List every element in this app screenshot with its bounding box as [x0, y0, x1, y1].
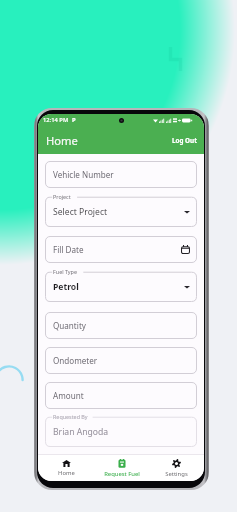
staticText: Select Project	[53, 206, 108, 218]
other: Pick date	[181, 245, 190, 254]
button[interactable]: Project	[45, 192, 197, 227]
staticText: Request Fuel	[104, 470, 140, 478]
staticText: Amount	[53, 390, 84, 401]
other: Open Fuel Type dropdown	[184, 285, 190, 289]
staticText: P	[72, 116, 76, 124]
staticText: Brian Angoda	[53, 426, 109, 438]
staticText: Petrol	[53, 281, 79, 293]
other: Open Project dropdown	[184, 210, 190, 214]
button[interactable]: Amount	[45, 382, 197, 409]
staticText: Fuel Type	[53, 268, 77, 275]
button[interactable]: Quantity	[45, 312, 197, 339]
staticText: Home	[58, 469, 75, 477]
staticText: 12:14 PM	[43, 116, 69, 124]
staticText: Ondometer	[53, 355, 98, 366]
button[interactable]: Home	[38, 455, 94, 481]
staticText: Project	[53, 193, 71, 200]
button[interactable]: Fill Date	[45, 236, 197, 263]
staticText: Quantity	[53, 320, 86, 331]
staticText: Log Out	[172, 136, 197, 145]
staticText: Home	[46, 133, 78, 148]
staticText: Vehicle Number	[53, 169, 114, 180]
button[interactable]: Vehicle Number	[45, 161, 197, 188]
staticText: Fill Date	[53, 244, 84, 255]
staticText: Requested By	[53, 413, 88, 420]
button[interactable]: Ondometer	[45, 347, 197, 374]
button[interactable]: Request Fuel	[94, 455, 149, 481]
button[interactable]: Settings	[149, 455, 204, 481]
button[interactable]: Fuel Type	[45, 267, 197, 302]
staticText: Settings	[165, 470, 188, 478]
button[interactable]: Log Out	[165, 129, 204, 152]
